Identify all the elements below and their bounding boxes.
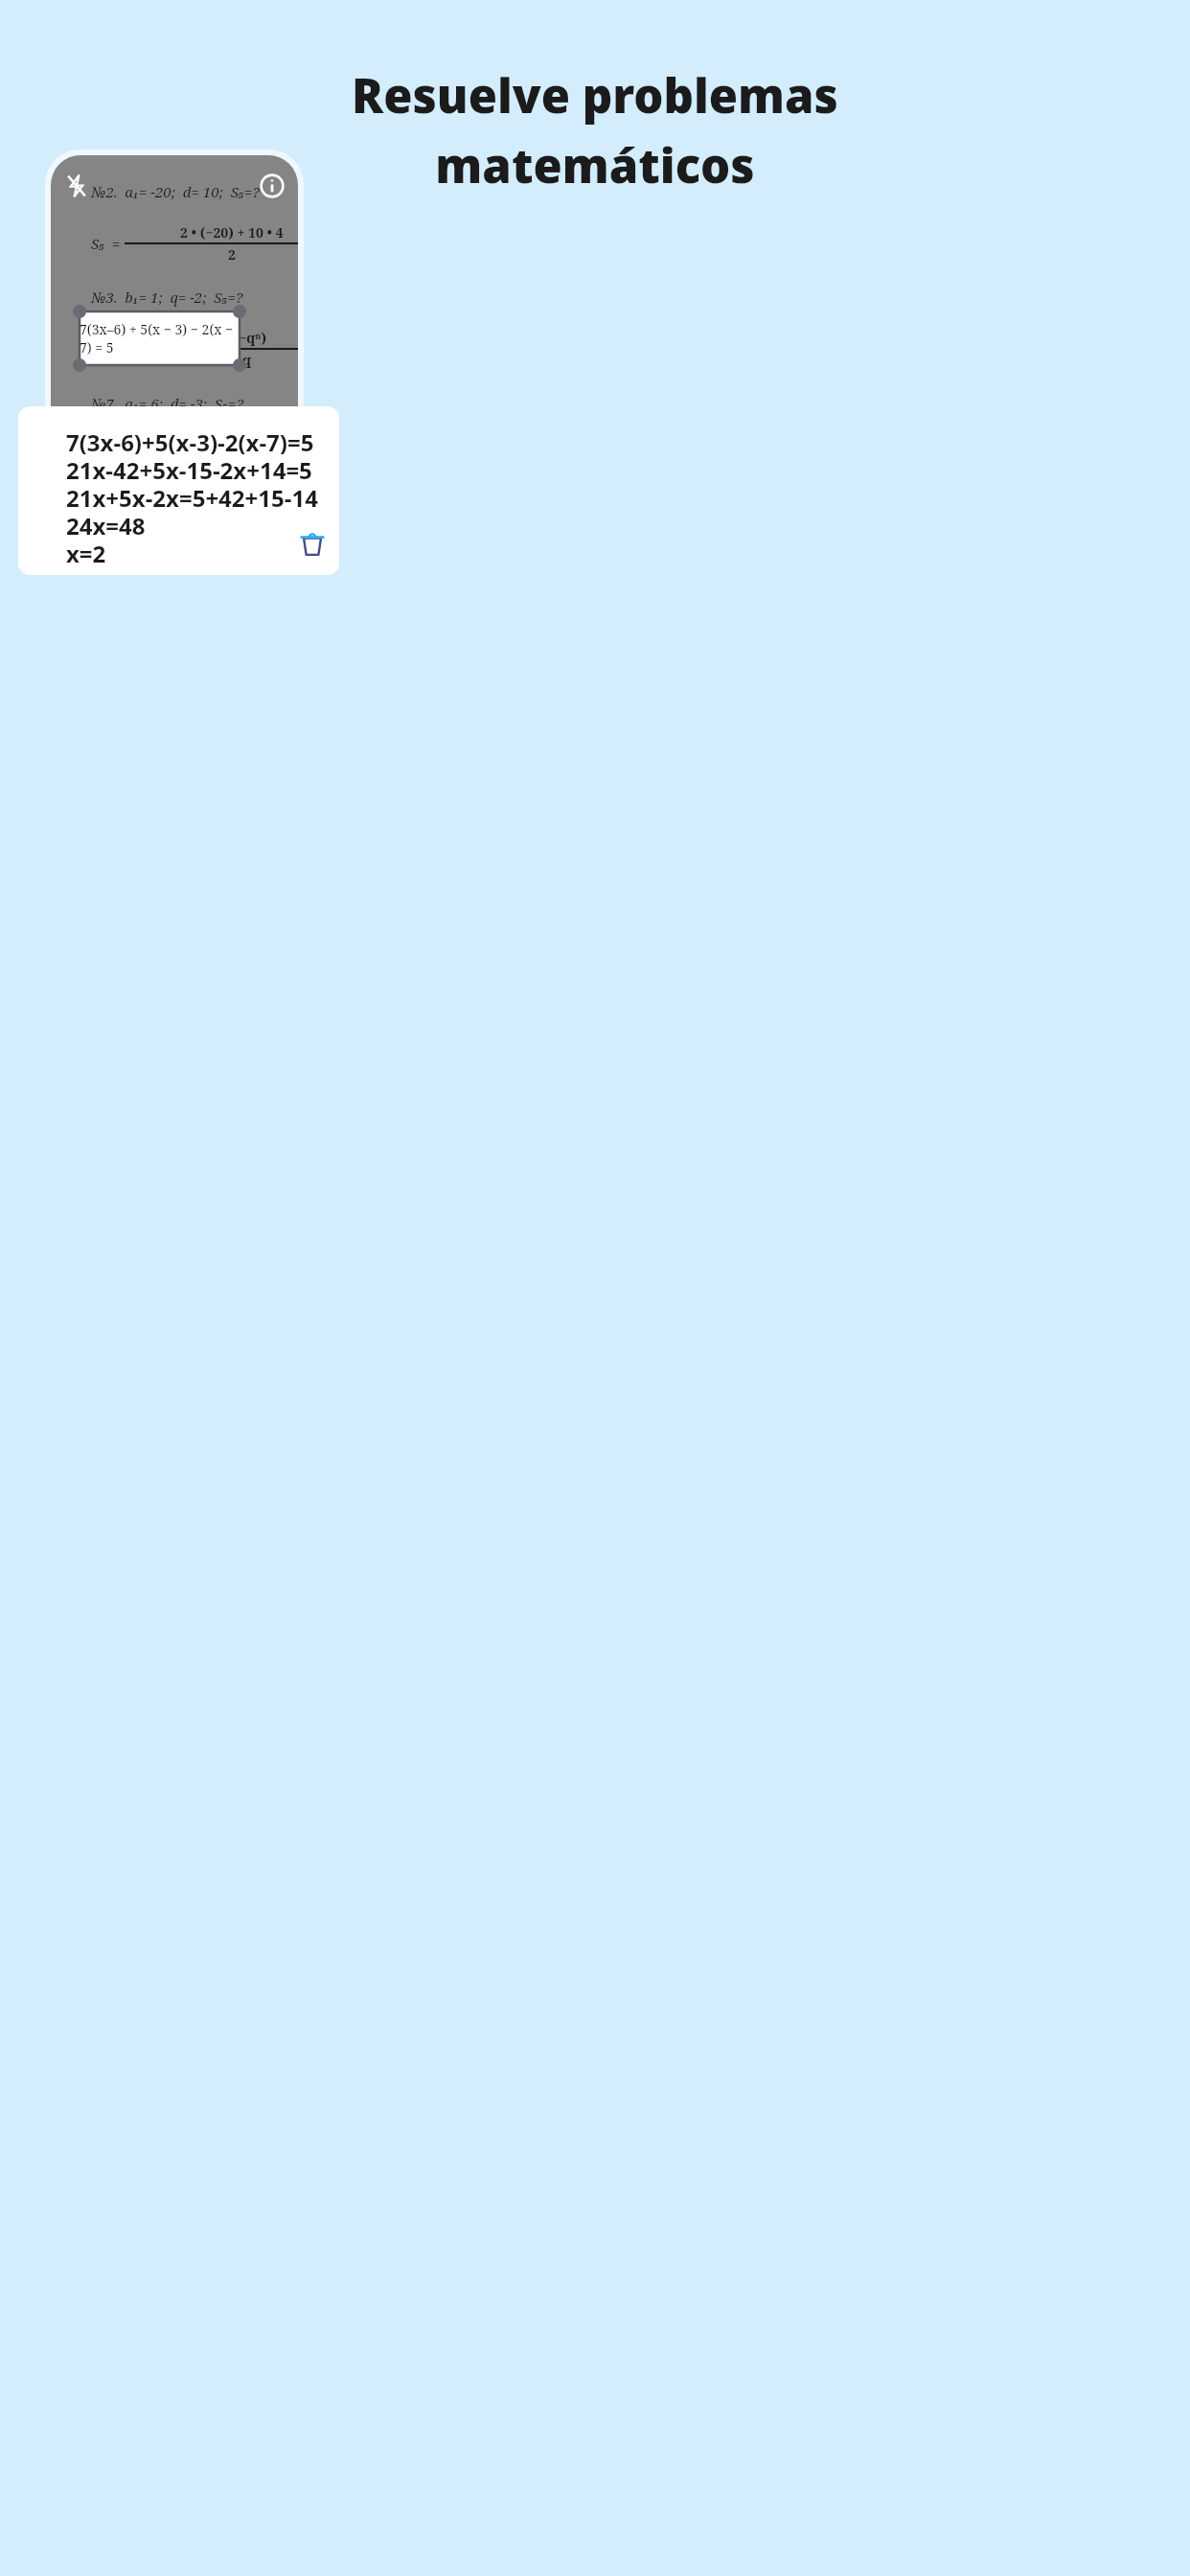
staticText: S₅ =	[91, 446, 121, 465]
staticText: matemáticos	[435, 133, 755, 197]
staticText: Resuelve problemas	[352, 63, 838, 127]
staticText: RECUENTO	[88, 426, 150, 442]
staticText: №2. a₁= -20; d= 10; S₅=?	[91, 182, 260, 201]
staticText: 2	[228, 245, 236, 264]
staticText: b₁(1−qⁿ)	[212, 329, 266, 347]
staticText: 2 • 6−3 • 4	[200, 435, 263, 453]
button[interactable]: Capture	[150, 436, 219, 505]
staticText: 7(3x-6)+5(x-3)-2(x-7)=5	[66, 426, 314, 454]
staticText: 21x+5x-2x=5+42+15-14	[66, 482, 318, 510]
staticText: №7. a₁= 6; d= -3; S₅=?	[91, 394, 243, 413]
button[interactable]: Flash off	[64, 173, 89, 198]
staticText: 2	[228, 457, 236, 475]
staticText: 1−q	[227, 351, 252, 369]
staticText: S₅ =	[91, 234, 121, 253]
staticText: x=2	[66, 538, 106, 565]
button[interactable]: SIGUIENTE	[216, 441, 275, 457]
staticText: 7(3x–6) + 5(x − 3) − 2(x − 7) = 5	[80, 320, 240, 356]
button[interactable]: MATEMÁTICA	[179, 426, 266, 452]
staticText: 21x-42+5x-15-2x+14=5	[66, 454, 312, 482]
button[interactable]: Info	[260, 173, 285, 198]
button[interactable]: RECUENTO	[82, 426, 156, 442]
staticText: SIGUIENTE	[223, 441, 275, 457]
staticText: 24x=48	[66, 510, 146, 538]
button[interactable]: Delete	[297, 529, 328, 560]
button[interactable]: 7(3x–6) + 5(x − 3) − 2(x − 7) = 5	[80, 311, 240, 365]
button[interactable]: Close	[60, 452, 99, 491]
staticText: 2 • (−20) + 10 • 4	[180, 223, 284, 241]
staticText: №8. b₁= - 1; q= 2; S₅=?	[91, 499, 247, 518]
staticText: №3. b₁= 1; q= -2; S₅=?	[91, 287, 243, 307]
staticText: MATEMÁTICA	[185, 426, 261, 442]
staticText: Sₙ =	[99, 339, 128, 358]
